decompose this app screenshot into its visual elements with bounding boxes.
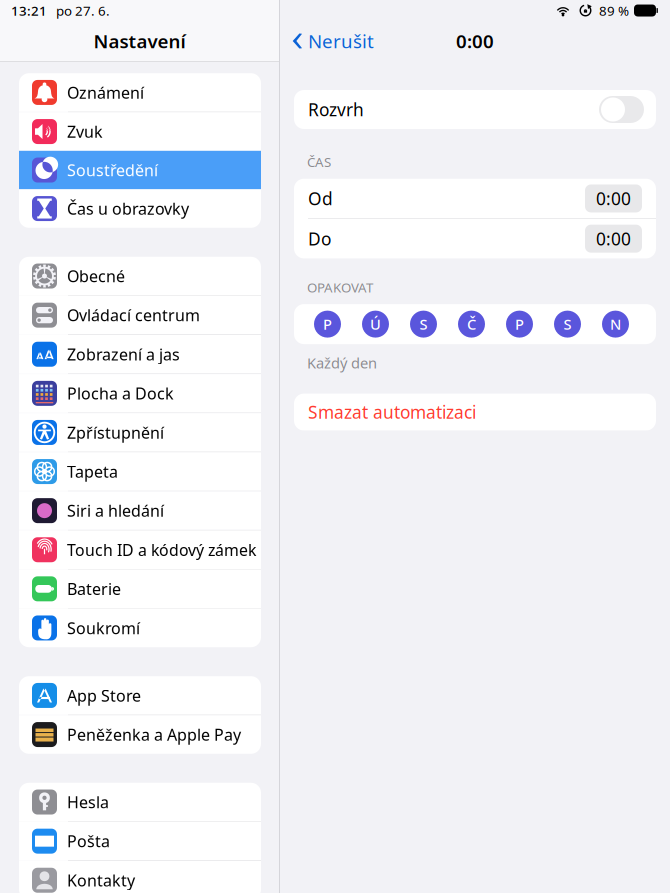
staticText: Do [308,227,331,250]
button[interactable]: N [602,311,629,338]
staticText: Soukromí [67,617,140,638]
staticText: Hesla [67,791,109,813]
button[interactable]: P [314,311,341,338]
staticText: 13:21 [11,2,47,19]
button[interactable]: P [506,311,533,338]
button[interactable]: Č [458,311,485,338]
button[interactable]: S [554,311,581,338]
button[interactable]: Smazat automatizaci [294,394,656,431]
button[interactable]: Pošta [19,822,261,860]
staticText: Zvuk [67,121,103,142]
staticText: Od [308,187,333,210]
staticText: N [610,314,621,334]
staticText: Nastavení [93,29,185,53]
button[interactable]: Soustředění [19,151,261,189]
button[interactable]: Rozvrh [294,90,656,129]
button[interactable]: Hesla [19,783,261,821]
button[interactable]: Siri a hledání [19,491,261,530]
button[interactable]: Zobrazení a jas [19,335,261,373]
button[interactable]: Zvuk [19,112,261,151]
button[interactable]: App Store [19,676,261,715]
staticText: 0:00 [456,29,494,53]
staticText: Pošta [67,830,110,852]
staticText: Peněženka a Apple Pay [67,724,241,745]
staticText: Soustředění [67,159,158,181]
button[interactable]: Nerušit [280,21,382,61]
staticText: P [323,314,332,334]
staticText: Zpřístupnění [67,422,164,443]
button[interactable]: Baterie [19,570,261,608]
button[interactable]: Do [294,219,656,258]
button[interactable]: Oznámení [19,73,261,112]
staticText: 89 % [599,2,629,19]
staticText: Kontakty [67,870,135,891]
staticText: ČAS [307,153,331,171]
staticText: 0:00 [596,187,631,210]
button[interactable]: Kontakty [19,861,261,893]
staticText: P [515,314,524,334]
button[interactable]: Od [294,179,656,218]
staticText: Touch ID a kódový zámek [67,539,256,560]
staticText: Obecné [67,265,125,287]
button[interactable]: Plocha a Dock [19,374,261,413]
staticText: Zobrazení a jas [67,344,180,365]
staticText: Ú [370,314,381,334]
staticText: App Store [67,685,141,706]
staticText: Siri a hledání [67,500,164,521]
button[interactable]: Peněženka a Apple Pay [19,715,261,754]
staticText: S [419,314,427,334]
button[interactable]: Ú [362,311,389,338]
button[interactable]: Čas u obrazovky [19,189,261,228]
button[interactable]: S [410,311,437,338]
staticText: Každý den [307,353,377,373]
staticText: Rozvrh [308,98,364,121]
staticText: po 27. 6. [56,2,110,19]
button[interactable]: Touch ID a kódový zámek [19,530,261,569]
staticText: Plocha a Dock [67,383,174,404]
staticText: OPAKOVAT [307,278,373,296]
staticText: Čas u obrazovky [67,198,189,219]
button[interactable]: Soukromí [19,609,261,647]
staticText: Tapeta [67,461,118,482]
staticText: Nerušit [308,29,374,53]
staticText: 0:00 [596,227,631,250]
staticText: Oznámení [67,82,144,103]
staticText: Baterie [67,578,121,599]
staticText: Č [467,314,476,334]
button[interactable]: Ovládací centrum [19,296,261,334]
staticText: Smazat automatizaci [308,401,476,424]
button[interactable]: Tapeta [19,452,261,491]
staticText: S [563,314,571,334]
button[interactable]: Zpřístupnění [19,413,261,452]
button[interactable]: Obecné [19,257,261,295]
staticText: Ovládací centrum [67,304,200,326]
